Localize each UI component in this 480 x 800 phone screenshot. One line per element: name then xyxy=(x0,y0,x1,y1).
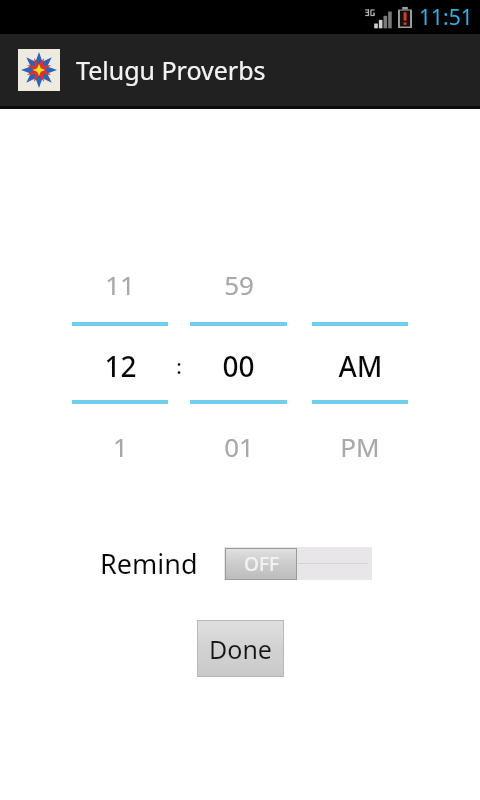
button[interactable]: 01 xyxy=(190,423,287,469)
staticText: PM xyxy=(340,429,380,464)
staticText: Telugu Proverbs xyxy=(76,53,266,87)
staticText: AM xyxy=(338,347,383,385)
staticText: 11:51 xyxy=(419,3,473,32)
button[interactable]: 11 xyxy=(72,261,168,307)
staticText: 12 xyxy=(104,347,137,385)
button[interactable]: 00 xyxy=(190,343,287,389)
button[interactable]: PM xyxy=(312,423,408,469)
staticText: 01 xyxy=(224,429,254,464)
button[interactable]: 59 xyxy=(190,261,287,307)
staticText: : xyxy=(176,353,182,380)
staticText: OFF xyxy=(244,551,279,577)
staticText: 00 xyxy=(222,347,255,385)
staticText: 59 xyxy=(224,267,254,302)
button[interactable]: Done xyxy=(198,621,283,676)
staticText: Done xyxy=(209,632,272,666)
button[interactable]: AM xyxy=(312,343,408,389)
button[interactable]: Remind toggle, off xyxy=(224,547,372,580)
staticText: 11 xyxy=(105,267,135,302)
staticText: Remind xyxy=(100,545,198,582)
button[interactable]: 12 xyxy=(72,343,168,389)
button[interactable]: 1 xyxy=(72,423,168,469)
staticText: 1 xyxy=(113,429,128,464)
